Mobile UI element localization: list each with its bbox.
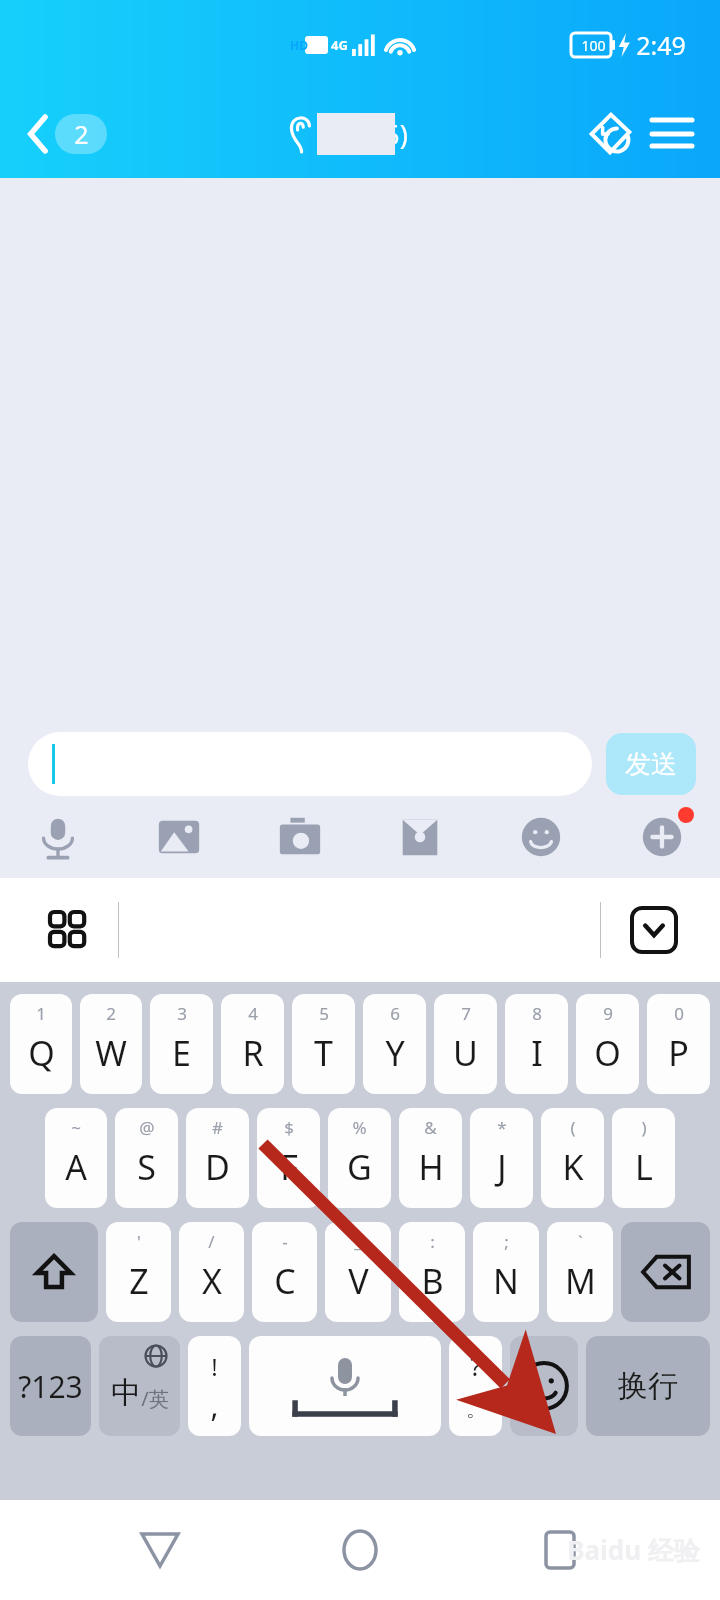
staticText: O [594,1030,621,1076]
button[interactable]: Back [120,1510,200,1590]
staticText: W [95,1030,127,1076]
button[interactable]: Space [249,1336,441,1436]
staticText: Y [385,1030,405,1076]
button[interactable]: : [399,1222,465,1322]
button[interactable]: ?123 [10,1336,91,1436]
button[interactable]: $ [257,1108,320,1208]
button[interactable]: 7 [434,994,497,1094]
button[interactable]: _ [325,1222,391,1322]
staticText: Z [129,1258,149,1304]
staticText: 1 [36,1002,46,1025]
staticText: V [348,1258,369,1304]
button[interactable]: ~ [45,1108,107,1208]
staticText: A [65,1144,87,1190]
button[interactable]: Home [320,1510,400,1590]
staticText: Q [28,1030,55,1076]
staticText: ) [641,1116,647,1139]
button[interactable]: # [186,1108,249,1208]
button[interactable]: shift [10,1222,98,1322]
staticText: H [418,1144,444,1190]
button[interactable]: & [399,1108,462,1208]
button[interactable]: 6 [363,994,426,1094]
button[interactable]: Gallery [141,799,217,875]
button[interactable]: Red packet [382,799,458,875]
staticText: 0 [674,1002,684,1025]
button[interactable]: Voice note [582,106,638,162]
button[interactable]: @ [115,1108,178,1208]
button[interactable]: ! [188,1336,241,1436]
staticText: C [274,1258,296,1304]
staticText: ( [570,1116,576,1139]
button[interactable]: ) [612,1108,675,1208]
button[interactable]: Camera [262,799,338,875]
staticText: - [282,1230,288,1253]
button[interactable]: 1 [10,994,72,1094]
staticText: 4G [331,36,348,54]
button[interactable]: ; [473,1222,539,1322]
staticText: 。 [466,1397,486,1422]
staticText: : [430,1230,435,1253]
button[interactable]: More [624,799,700,875]
staticText: $ [284,1116,294,1139]
staticText: P [668,1030,689,1076]
button[interactable]: Hide keyboard [622,898,686,962]
staticText: ' [137,1230,141,1253]
button[interactable]: * [470,1108,533,1208]
staticText: U [453,1030,478,1076]
button[interactable]: ` [547,1222,613,1322]
button[interactable]: 3 [150,994,213,1094]
staticText: 换行 [618,1367,678,1405]
button[interactable] [28,732,592,796]
button[interactable]: 2 [80,994,142,1094]
button[interactable]: ( [541,1108,604,1208]
staticText: M [565,1258,596,1304]
staticText: 7 [461,1002,471,1025]
button[interactable]: 中 [99,1336,180,1436]
button[interactable]: ' [106,1222,171,1322]
staticText: Baidu 经验 [567,1532,700,1568]
staticText: D [205,1144,230,1190]
button[interactable]: 发送 [606,733,696,795]
button[interactable]: Emoji [510,1336,578,1436]
button[interactable]: Emoji [503,799,579,875]
staticText: / [208,1230,215,1253]
staticText: 5 [319,1002,329,1025]
staticText: N [493,1258,519,1304]
button[interactable]: 0 [647,994,710,1094]
button[interactable]: / [179,1222,244,1322]
button[interactable]: Recents [520,1510,600,1590]
staticText: T [314,1030,333,1076]
button[interactable]: ? [449,1336,502,1436]
button[interactable]: Voice [20,799,96,875]
staticText: * [497,1116,507,1139]
button[interactable]: Menu [646,108,698,160]
button[interactable]: Keyboard modes [36,898,100,962]
staticText: 2 [106,1002,116,1025]
staticText: S [137,1144,156,1190]
staticText: 2 [74,117,89,151]
staticText: XXXX5) [321,116,408,153]
staticText: 发送 [625,748,677,781]
staticText: ` [578,1230,583,1253]
button[interactable]: 2 [22,108,113,160]
staticText: F [280,1144,298,1190]
staticText: ; [504,1230,509,1253]
staticText: % [352,1116,367,1139]
staticText: X [202,1258,222,1304]
button[interactable]: 8 [505,994,568,1094]
button[interactable]: 5 [292,994,355,1094]
staticText: 2:49 [636,28,686,62]
button[interactable]: 4 [221,994,284,1094]
staticText: E [172,1030,191,1076]
button[interactable]: - [252,1222,317,1322]
button[interactable]: 换行 [586,1336,710,1436]
button[interactable]: 9 [576,994,639,1094]
button[interactable]: del [621,1222,710,1322]
staticText: L [635,1144,653,1190]
staticText: G [347,1144,372,1190]
staticText: J [497,1144,507,1190]
staticText: 6 [390,1002,400,1025]
staticText: /英 [141,1385,169,1412]
staticText: , [210,1385,219,1426]
button[interactable]: % [328,1108,391,1208]
